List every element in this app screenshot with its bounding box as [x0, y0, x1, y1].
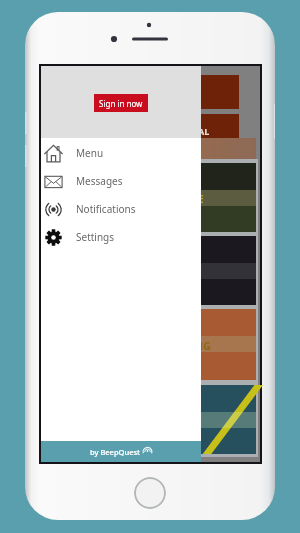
staticText: Notifications [76, 202, 136, 216]
button[interactable] [41, 75, 239, 109]
staticText: Messages [76, 174, 123, 188]
staticText: AL [198, 125, 210, 137]
button[interactable] [41, 385, 256, 454]
staticText: Sign in now [99, 98, 143, 109]
button[interactable]: by BeepQuest [41, 441, 201, 462]
button[interactable]: NG [41, 309, 256, 380]
button[interactable]: AL [41, 114, 239, 138]
button[interactable]: Notifications [41, 195, 201, 223]
button[interactable]: Home button [134, 477, 166, 509]
staticText: NG [194, 338, 211, 353]
button[interactable]: Sign in now [94, 94, 148, 112]
button[interactable]: Menu [41, 139, 201, 167]
staticText: Settings [76, 230, 115, 244]
staticText: by BeepQuest [90, 447, 140, 457]
staticText: Menu [76, 146, 104, 160]
staticText: E [198, 192, 204, 206]
button[interactable]: Messages [41, 167, 201, 195]
button[interactable]: Settings [41, 223, 201, 251]
button[interactable] [41, 236, 256, 305]
button[interactable]: E [41, 163, 256, 232]
